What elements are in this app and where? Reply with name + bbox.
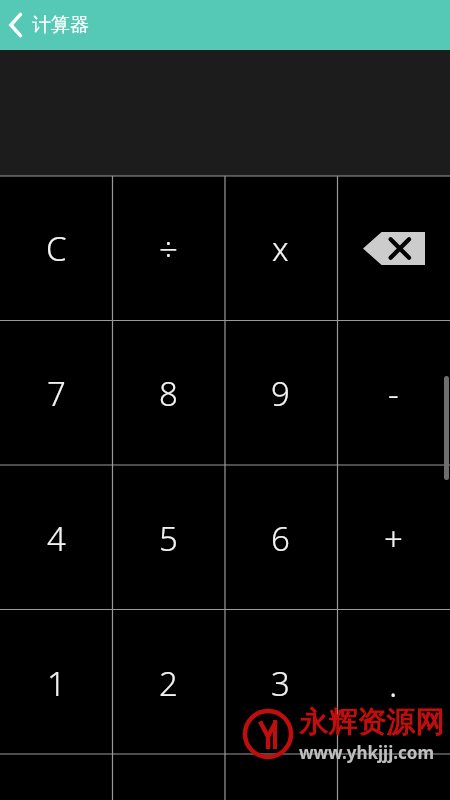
button[interactable]: - (337, 321, 450, 466)
button[interactable]: 1 (0, 611, 112, 756)
staticText: 9 (271, 371, 290, 416)
staticText: x (272, 226, 289, 271)
button[interactable]: Back (0, 0, 32, 50)
staticText: 4 (47, 516, 66, 561)
button[interactable]: Backspace (337, 176, 450, 321)
button[interactable]: 7 (0, 321, 112, 466)
button[interactable] (337, 756, 450, 800)
staticText: 6 (271, 516, 290, 561)
staticText: 1 (47, 661, 66, 706)
button[interactable] (224, 756, 337, 800)
staticText: 2 (159, 661, 178, 706)
staticText: 8 (159, 371, 178, 416)
button[interactable]: 5 (112, 466, 224, 611)
staticText: 计算器 (32, 13, 89, 37)
button[interactable]: 9 (224, 321, 337, 466)
button[interactable]: C (0, 176, 112, 321)
staticText: C (46, 226, 67, 271)
button[interactable]: x (224, 176, 337, 321)
button[interactable]: 6 (224, 466, 337, 611)
button[interactable]: . (337, 611, 450, 756)
staticText: 7 (47, 371, 66, 416)
staticText: 3 (271, 661, 290, 706)
staticText: . (389, 661, 398, 707)
button[interactable]: 3 (224, 611, 337, 756)
button[interactable]: + (337, 466, 450, 611)
button[interactable] (112, 756, 224, 800)
button[interactable]: 8 (112, 321, 224, 466)
staticText: ÷ (159, 226, 178, 271)
button[interactable]: 4 (0, 466, 112, 611)
staticText: www.yhkjjj.com (299, 741, 434, 764)
staticText: + (384, 516, 403, 561)
staticText: - (388, 371, 399, 416)
staticText: 永辉资源网 (299, 704, 444, 741)
staticText: 5 (159, 516, 178, 561)
button[interactable]: 2 (112, 611, 224, 756)
button[interactable]: ÷ (112, 176, 224, 321)
